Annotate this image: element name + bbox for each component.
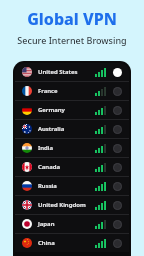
staticText: Canada	[38, 163, 60, 171]
staticText: India	[38, 144, 54, 152]
staticText: Japan	[38, 220, 55, 228]
staticText: Secure Internet Browsing	[17, 34, 127, 46]
button[interactable]: Japan	[15, 215, 129, 234]
button[interactable]: United States	[15, 63, 129, 82]
button[interactable]: United Kingdom	[15, 196, 129, 215]
staticText: United Kingdom	[38, 201, 86, 209]
button[interactable]: China	[15, 234, 129, 252]
button[interactable]: Russia	[15, 177, 129, 196]
button[interactable]: France	[15, 82, 129, 101]
staticText: China	[38, 239, 55, 247]
staticText: Germany	[38, 106, 65, 114]
button[interactable]: India	[15, 139, 129, 158]
button[interactable]: Australia	[15, 120, 129, 139]
staticText: Australia	[38, 125, 65, 133]
staticText: United States	[38, 68, 78, 76]
staticText: Russia	[38, 182, 57, 190]
staticText: France	[38, 87, 58, 95]
button[interactable]: Canada	[15, 158, 129, 177]
staticText: Global VPN	[27, 8, 117, 30]
button[interactable]: Germany	[15, 101, 129, 120]
